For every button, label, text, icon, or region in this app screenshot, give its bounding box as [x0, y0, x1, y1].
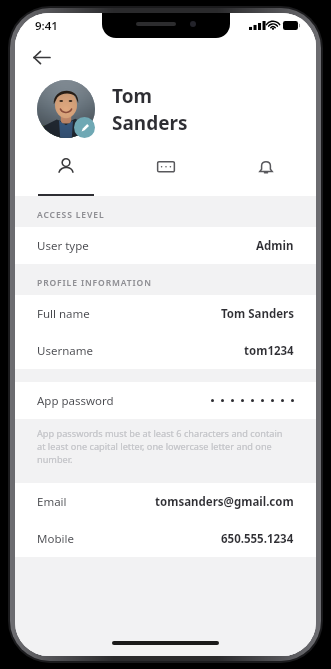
button[interactable]: Back — [24, 40, 58, 74]
staticText: Username — [37, 343, 93, 359]
staticText: App password — [37, 393, 114, 409]
button[interactable]: Username — [15, 332, 316, 369]
staticText: Tom — [112, 83, 153, 109]
staticText: 9:41 — [35, 18, 58, 34]
staticText: Email — [37, 494, 67, 510]
staticText: User type — [37, 238, 89, 254]
button[interactable]: Edit photo — [74, 117, 95, 138]
staticText: ACCESS LEVEL — [37, 209, 105, 221]
staticText: 650.555.1234 — [221, 531, 294, 547]
button[interactable]: Profile — [15, 148, 116, 196]
staticText: Full name — [37, 306, 90, 322]
staticText: Tom Sanders — [221, 306, 294, 322]
staticText: tomsanders@gmail.com — [155, 494, 294, 510]
staticText: PROFILE INFORMATION — [37, 277, 152, 289]
button[interactable]: Full name — [15, 295, 316, 332]
button[interactable]: Messages — [116, 148, 216, 196]
staticText: App passwords must be at least 6 charact… — [37, 427, 292, 466]
button[interactable]: App password — [15, 382, 316, 419]
staticText: Admin — [256, 238, 294, 254]
button[interactable]: User type — [15, 227, 316, 264]
button[interactable]: Mobile — [15, 520, 316, 557]
button[interactable]: Notifications — [216, 148, 316, 196]
button[interactable]: Email — [15, 483, 316, 520]
staticText: tom1234 — [244, 343, 294, 359]
staticText: Mobile — [37, 531, 74, 547]
staticText: Sanders — [112, 110, 188, 136]
